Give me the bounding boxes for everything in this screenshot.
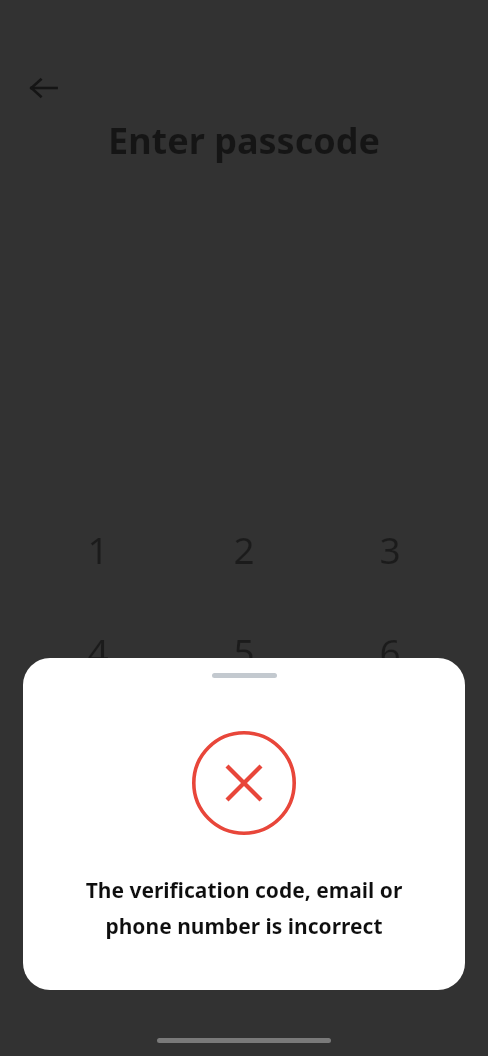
staticText: 3	[379, 524, 401, 574]
button[interactable]: 5	[196, 624, 292, 678]
button[interactable]: 8	[196, 726, 292, 780]
staticText: 1	[87, 524, 109, 574]
staticText: 4	[87, 626, 109, 676]
staticText: 6	[379, 626, 401, 676]
staticText: 8	[233, 728, 255, 778]
button[interactable]: 4	[50, 624, 146, 678]
staticText: 5	[233, 626, 255, 676]
button[interactable]: 6	[342, 624, 438, 678]
button[interactable]: 2	[196, 522, 292, 576]
staticText: 2	[233, 524, 255, 574]
staticText: The verification code, email or phone nu…	[51, 876, 437, 940]
staticText: Enter passcode	[108, 116, 380, 165]
button[interactable]: 3	[342, 522, 438, 576]
button[interactable]: Back	[16, 60, 72, 116]
button[interactable]: Drag handle	[212, 673, 277, 678]
